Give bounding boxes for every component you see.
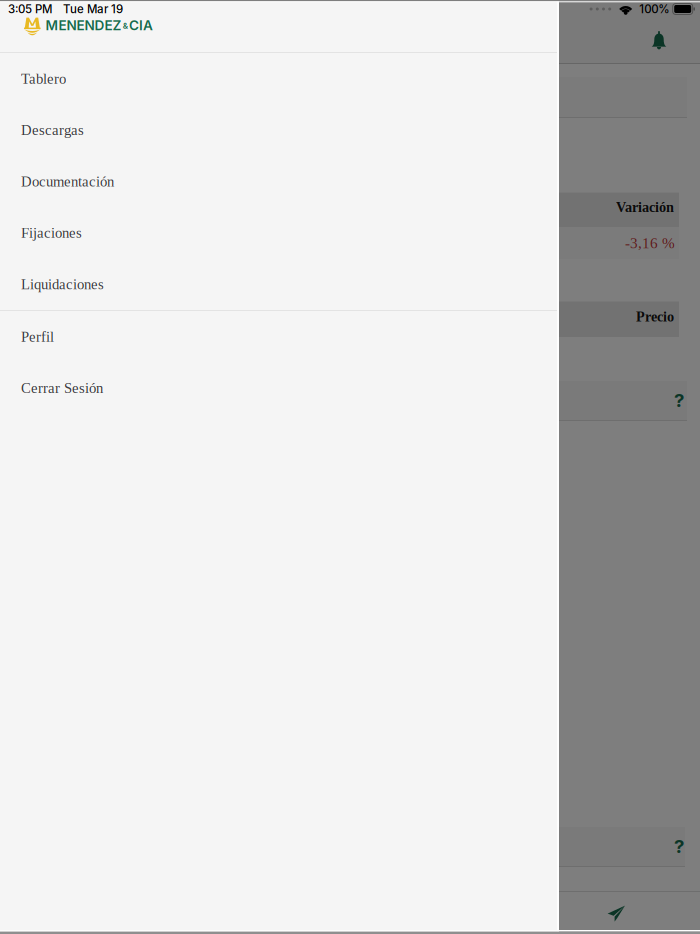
staticText: Tue Mar 19: [63, 2, 123, 16]
button[interactable]: Descargas: [0, 104, 558, 156]
button[interactable]: Ayuda: [665, 381, 693, 420]
staticText: CIA: [121, 24, 145, 41]
staticText: Documentación: [21, 173, 114, 190]
staticText: Precio: [636, 309, 674, 325]
button[interactable]: Documentación: [0, 156, 558, 207]
button[interactable]: Enviar: [594, 895, 639, 932]
staticText: CIA: [129, 17, 153, 34]
staticText: MENENDEZ: [38, 24, 114, 41]
staticText: Variación: [616, 199, 674, 215]
staticText: Cerrar Sesión: [21, 380, 103, 396]
button[interactable]: Perfil: [0, 311, 558, 362]
button[interactable]: Liquidaciones: [0, 259, 558, 310]
staticText: 3:05 PM: [8, 2, 52, 16]
staticText: ?: [674, 389, 684, 412]
staticText: Tablero: [21, 71, 66, 87]
button[interactable]: Fijaciones: [0, 207, 558, 259]
staticText: Fijaciones: [21, 225, 82, 241]
staticText: MENENDEZ: [46, 17, 122, 34]
staticText: -3,16 %: [625, 235, 675, 251]
button[interactable]: Ayuda: [665, 827, 693, 866]
button[interactable]: Notificaciones: [637, 21, 681, 60]
staticText: Perfil: [21, 329, 54, 345]
staticText: Descargas: [21, 122, 84, 138]
staticText: &: [115, 28, 120, 38]
button[interactable]: Cerrar Sesión: [0, 362, 558, 414]
staticText: Liquidaciones: [21, 276, 104, 292]
staticText: ?: [674, 835, 684, 858]
staticText: 100%: [639, 2, 669, 16]
button[interactable]: Tablero: [0, 53, 558, 104]
staticText: &: [123, 21, 128, 31]
